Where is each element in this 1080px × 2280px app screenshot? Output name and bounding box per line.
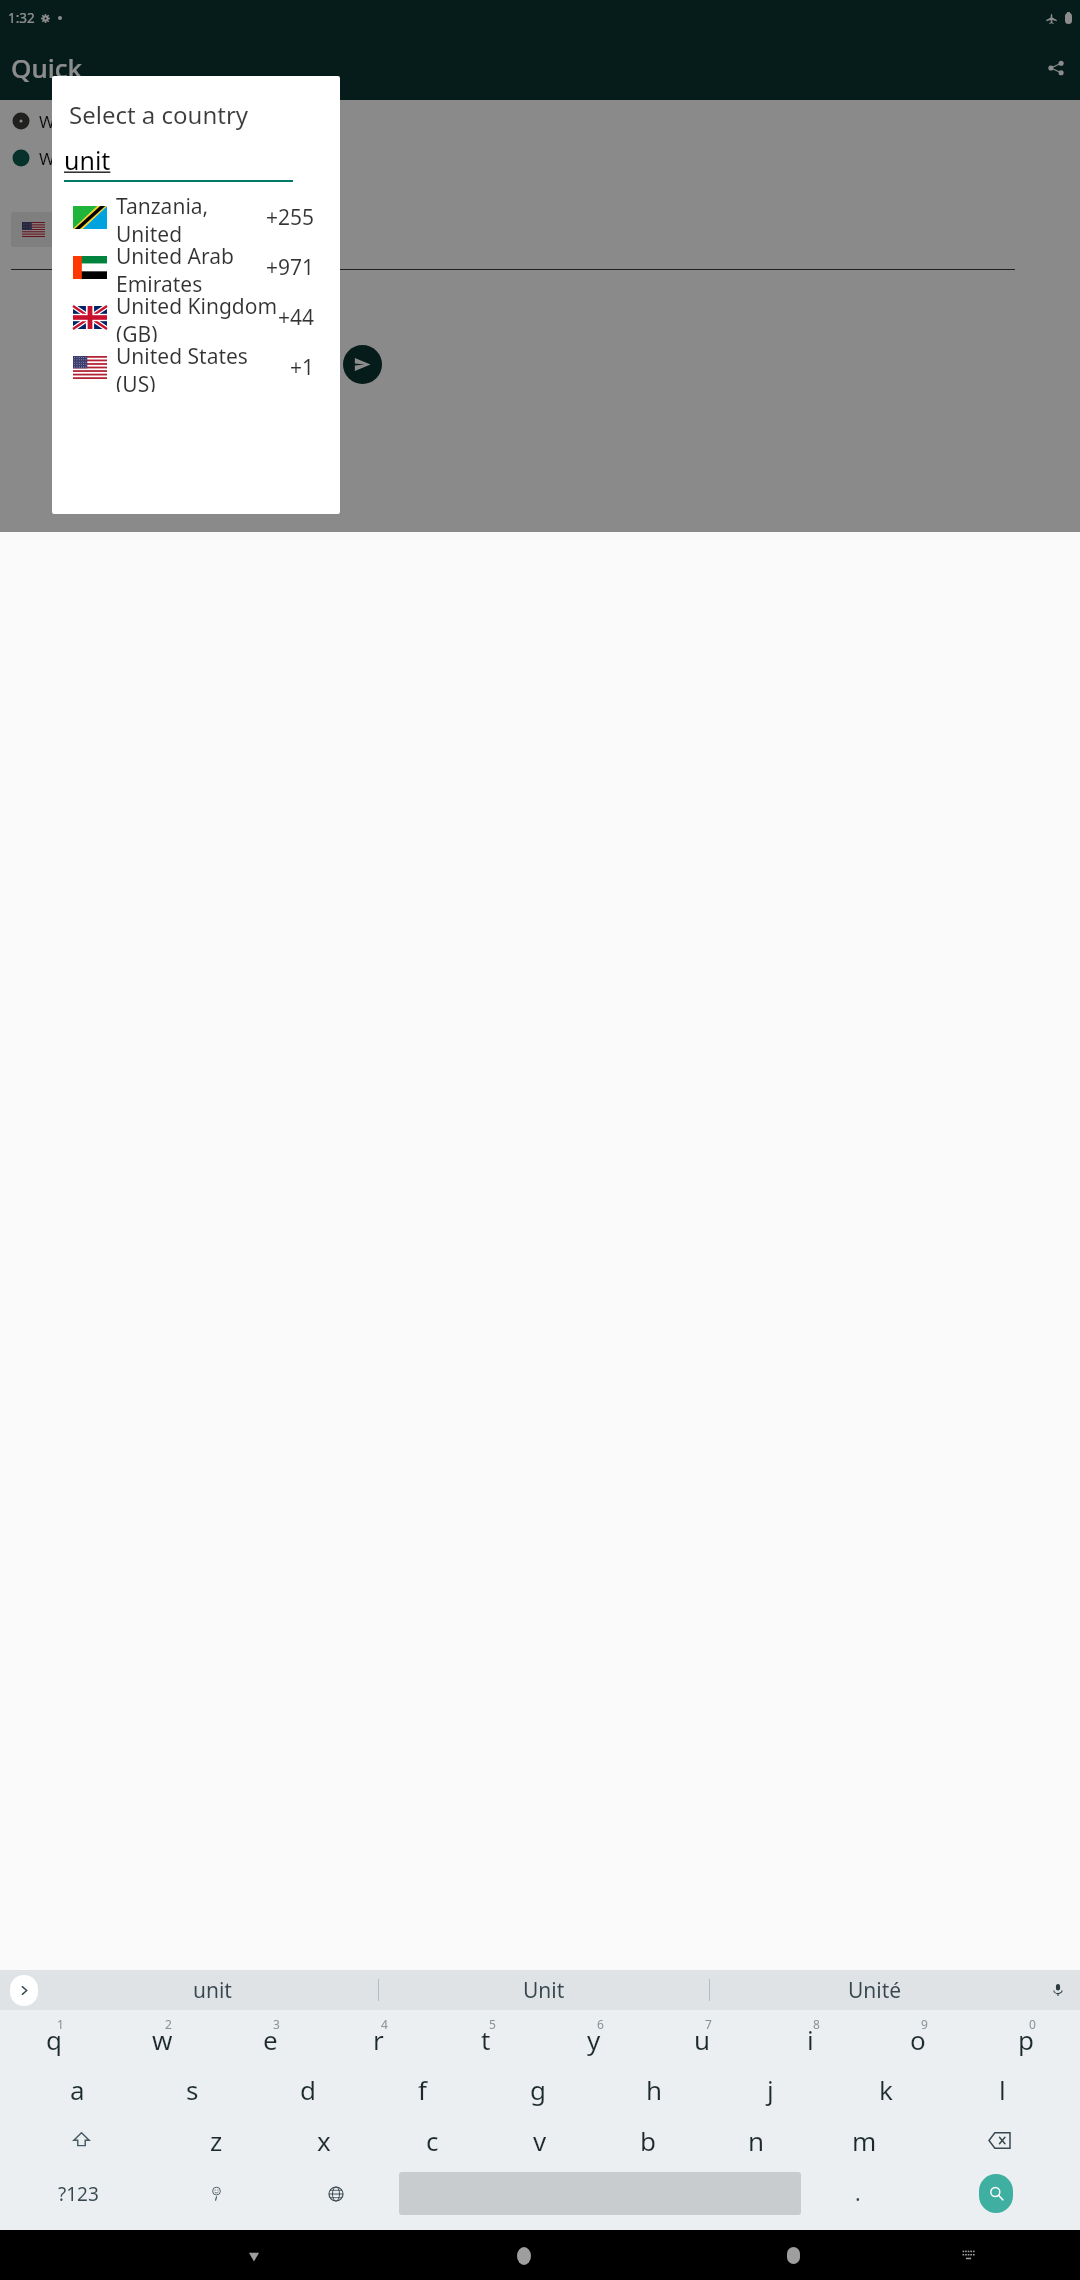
button[interactable]: m bbox=[810, 2115, 918, 2166]
button[interactable]: United States (US) bbox=[52, 342, 340, 392]
staticText: United States (US) bbox=[116, 342, 290, 392]
staticText: 1:32 bbox=[8, 9, 35, 27]
staticText: q bbox=[46, 2022, 62, 2057]
staticText: 1 bbox=[57, 2016, 64, 2032]
button[interactable]: 2 bbox=[108, 2010, 216, 2064]
staticText: 7 bbox=[705, 2016, 712, 2032]
staticText: 8 bbox=[813, 2016, 820, 2032]
button[interactable]: 3 bbox=[216, 2010, 324, 2064]
staticText: v bbox=[533, 2123, 547, 2158]
staticText: +1 bbox=[290, 353, 315, 382]
button[interactable]: j bbox=[712, 2064, 828, 2115]
button[interactable]: 7 bbox=[648, 2010, 756, 2064]
staticText: Unit bbox=[523, 1976, 565, 2005]
button[interactable]: Unité bbox=[710, 1970, 1040, 2010]
button[interactable]: 0 bbox=[972, 2010, 1080, 2064]
button[interactable] bbox=[11, 212, 55, 247]
button[interactable]: Change keyboard language bbox=[276, 2166, 396, 2221]
button[interactable]: b bbox=[594, 2115, 702, 2166]
staticText: 3 bbox=[273, 2016, 280, 2032]
button[interactable]: WhatsApp bbox=[11, 107, 1080, 135]
button[interactable]: h bbox=[596, 2064, 712, 2115]
staticText: w bbox=[152, 2022, 173, 2057]
button[interactable]: unit bbox=[47, 1970, 378, 2010]
button[interactable]: 1 bbox=[0, 2010, 108, 2064]
staticText: y bbox=[587, 2022, 601, 2057]
button[interactable]: z bbox=[162, 2115, 270, 2166]
staticText: +44 bbox=[278, 303, 315, 332]
button[interactable]: Back bbox=[237, 2239, 270, 2272]
staticText: Quick bbox=[11, 50, 83, 85]
button[interactable]: a bbox=[20, 2064, 135, 2115]
button[interactable]: d bbox=[250, 2064, 365, 2115]
staticText: b bbox=[640, 2123, 656, 2158]
button[interactable]: v bbox=[486, 2115, 594, 2166]
staticText: k bbox=[879, 2072, 893, 2107]
button[interactable]: United Kingdom (GB) bbox=[52, 292, 340, 342]
button[interactable]: Send bbox=[343, 345, 382, 384]
staticText: m bbox=[852, 2123, 877, 2158]
staticText: United Arab Emirates (UAE) (AE) bbox=[116, 242, 266, 292]
button[interactable]: Backspace bbox=[918, 2115, 1080, 2166]
button[interactable]: Emoji bbox=[156, 2166, 276, 2221]
staticText: United Kingdom (GB) bbox=[116, 292, 278, 342]
staticText: x bbox=[317, 2123, 331, 2158]
button[interactable]: Unit bbox=[379, 1970, 709, 2010]
button[interactable]: Home bbox=[507, 2239, 540, 2272]
button[interactable]: g bbox=[480, 2064, 596, 2115]
staticText: z bbox=[210, 2123, 223, 2158]
button[interactable]: Share bbox=[1043, 55, 1069, 81]
button[interactable]: l bbox=[944, 2064, 1060, 2115]
staticText: unit bbox=[193, 1976, 232, 2005]
button[interactable]: 8 bbox=[756, 2010, 864, 2064]
staticText: 0 bbox=[1029, 2016, 1036, 2032]
staticText: 6 bbox=[597, 2016, 604, 2032]
button[interactable]: Voice input bbox=[1047, 1979, 1069, 2001]
button[interactable]: k bbox=[828, 2064, 944, 2115]
button[interactable]: Tanzania, United Republic Of (TZ) bbox=[52, 192, 340, 242]
staticText: t bbox=[481, 2022, 491, 2057]
staticText: e bbox=[263, 2022, 278, 2057]
staticText: j bbox=[767, 2072, 774, 2107]
staticText: o bbox=[910, 2022, 926, 2057]
staticText: a bbox=[70, 2072, 85, 2107]
button[interactable]: f bbox=[365, 2064, 480, 2115]
staticText: Select a country bbox=[69, 98, 249, 131]
button[interactable]: Shift bbox=[0, 2115, 162, 2166]
button[interactable]: 4 bbox=[324, 2010, 432, 2064]
staticText: Unité bbox=[848, 1976, 902, 2005]
staticText: 5 bbox=[489, 2016, 496, 2032]
button[interactable]: s bbox=[135, 2064, 250, 2115]
button[interactable]: c bbox=[378, 2115, 486, 2166]
staticText: f bbox=[418, 2072, 427, 2107]
button[interactable]: n bbox=[702, 2115, 810, 2166]
staticText: 4 bbox=[381, 2016, 388, 2032]
button[interactable]: Search bbox=[979, 2174, 1013, 2213]
staticText: 9 bbox=[921, 2016, 928, 2032]
staticText: h bbox=[646, 2072, 663, 2107]
button[interactable]: 6 bbox=[540, 2010, 648, 2064]
staticText: l bbox=[999, 2072, 1006, 2107]
staticText: . bbox=[855, 2179, 861, 2208]
staticText: Tanzania, United Republic Of (TZ) bbox=[116, 192, 266, 242]
staticText: 2 bbox=[165, 2016, 172, 2032]
button[interactable]: 9 bbox=[864, 2010, 972, 2064]
button[interactable]: More suggestions bbox=[10, 1975, 38, 2006]
button[interactable]: Switch keyboard bbox=[952, 2239, 985, 2272]
button[interactable]: Recent apps bbox=[777, 2239, 810, 2272]
button[interactable]: ?123 bbox=[0, 2166, 156, 2221]
staticText: r bbox=[373, 2022, 384, 2057]
staticText: p bbox=[1018, 2022, 1034, 2057]
button[interactable]: United Arab Emirates (UAE) (AE) bbox=[52, 242, 340, 292]
staticText: g bbox=[530, 2072, 546, 2107]
staticText: ?123 bbox=[58, 2181, 99, 2207]
button[interactable]: x bbox=[270, 2115, 378, 2166]
button[interactable]: 5 bbox=[432, 2010, 540, 2064]
staticText: i bbox=[807, 2022, 814, 2057]
button[interactable]: . bbox=[804, 2166, 912, 2221]
staticText: n bbox=[748, 2123, 765, 2158]
staticText: s bbox=[186, 2072, 199, 2107]
staticText: d bbox=[300, 2072, 316, 2107]
button[interactable]: WhatsApp Business bbox=[11, 144, 1080, 172]
